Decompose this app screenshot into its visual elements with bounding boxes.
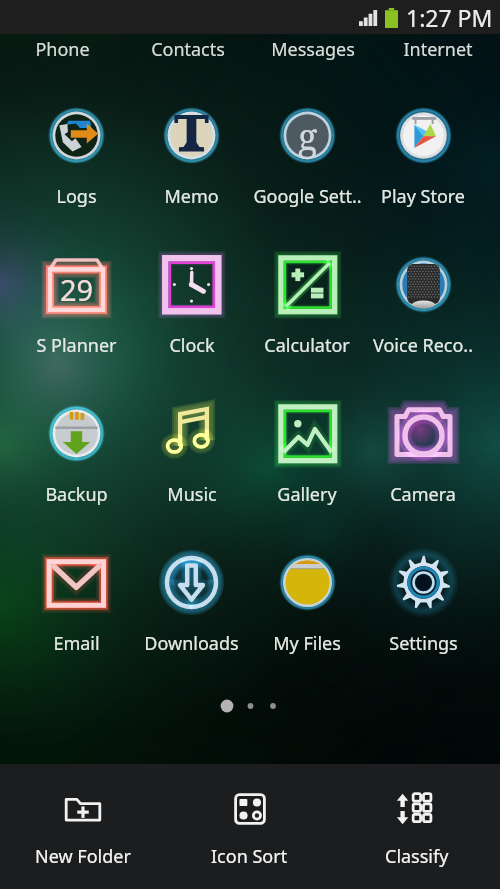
staticText: Downloads (144, 631, 239, 656)
button[interactable]: Memo (134, 78, 249, 227)
button[interactable]: Logs (19, 78, 134, 227)
button[interactable]: Calculator (249, 227, 365, 376)
staticText: Gallery (277, 482, 337, 507)
staticText: Clock (169, 333, 215, 358)
button[interactable]: New Folder (0, 764, 166, 889)
button[interactable]: My Files (249, 525, 365, 674)
staticText: Backup (45, 482, 108, 507)
button[interactable]: Internet (375, 34, 500, 64)
button[interactable]: Gallery (249, 376, 365, 525)
staticText: My Files (273, 631, 341, 656)
staticText: Camera (390, 482, 456, 507)
button[interactable]: Settings (365, 525, 481, 674)
staticText: 29 (60, 270, 94, 309)
staticText: Logs (56, 184, 97, 209)
button[interactable]: Play Store (365, 78, 481, 227)
staticText: Messages (271, 37, 355, 62)
button[interactable]: Camera (365, 376, 481, 525)
staticText: Memo (164, 184, 219, 209)
button[interactable]: Classify (333, 764, 500, 889)
staticText: Google Sett.. (253, 184, 362, 209)
button[interactable]: Phone (0, 34, 125, 64)
staticText: Calculator (264, 333, 350, 358)
staticText: New Folder (35, 844, 131, 869)
staticText: Internet (403, 37, 473, 62)
staticText: Icon Sort (211, 844, 288, 869)
staticText: Settings (389, 631, 458, 656)
button[interactable]: Messages (250, 34, 375, 64)
staticText: Email (53, 631, 100, 656)
button[interactable]: g (249, 78, 365, 227)
staticText: g (298, 112, 318, 161)
button[interactable]: Downloads (134, 525, 249, 674)
button[interactable]: Icon Sort (166, 764, 333, 889)
staticText: Classify (385, 844, 449, 869)
button[interactable]: 29 (19, 227, 134, 376)
staticText: Voice Reco.. (373, 333, 473, 358)
button[interactable]: Contacts (125, 34, 250, 64)
button[interactable]: Voice Reco.. (365, 227, 481, 376)
staticText: Contacts (151, 37, 225, 62)
button[interactable]: Music (134, 376, 249, 525)
button[interactable]: Email (19, 525, 134, 674)
button[interactable]: Clock (134, 227, 249, 376)
staticText: 1:27 PM (406, 2, 493, 33)
staticText: Music (167, 482, 217, 507)
button[interactable]: Backup (19, 376, 134, 525)
staticText: Play Store (381, 184, 465, 209)
staticText: Phone (35, 37, 90, 62)
staticText: S Planner (36, 333, 117, 358)
